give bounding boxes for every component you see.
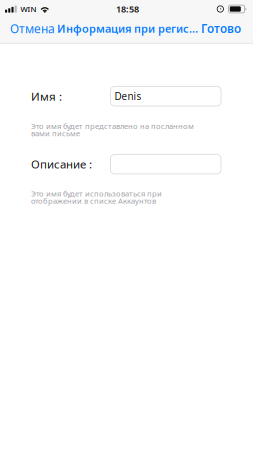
staticText: вами письме [31, 128, 80, 138]
button[interactable]: Denis [110, 86, 221, 106]
staticText: Отмена [10, 20, 55, 37]
staticText: Готово [201, 20, 241, 36]
button[interactable] [110, 154, 221, 174]
button[interactable]: Готово [201, 16, 241, 41]
staticText: WIN [20, 4, 36, 14]
staticText: отображении в списке Аккаунтов [31, 195, 156, 206]
button[interactable]: Отмена [0, 16, 57, 41]
staticText: Это имя будет представлено на посланном [31, 121, 194, 131]
staticText: Информация при регис... [57, 21, 198, 36]
button[interactable]: Информация при регис... [57, 16, 200, 41]
staticText: Это имя будет использоваться при [31, 188, 162, 199]
staticText: Имя : [31, 88, 62, 104]
staticText: 18:58 [116, 3, 139, 15]
staticText: Denis [114, 89, 141, 103]
staticText: Описание : [31, 156, 92, 172]
